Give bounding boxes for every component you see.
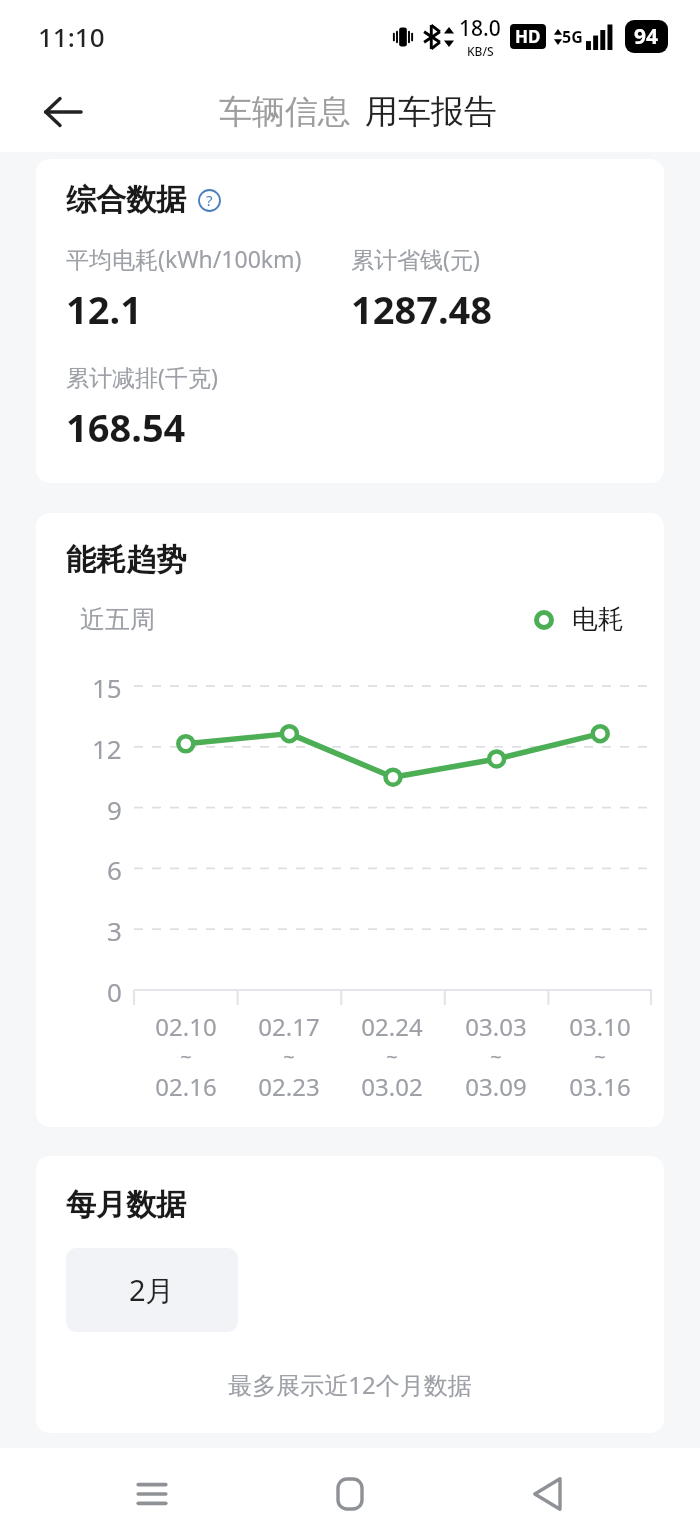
staticText: 每月数据 <box>66 1186 186 1224</box>
staticText: 03.02 <box>361 1070 423 1103</box>
staticText: 03.10 <box>569 1010 631 1043</box>
staticText: 6 <box>107 852 122 884</box>
staticText: 5G <box>562 26 583 48</box>
staticText: ~ <box>594 1043 606 1070</box>
staticText: 综合数据 <box>66 181 186 219</box>
staticText: 02.10 <box>155 1010 217 1043</box>
staticText: 9 <box>107 792 122 824</box>
staticText: 1287.48 <box>351 283 493 335</box>
button[interactable]: Recent apps <box>106 1448 198 1540</box>
button[interactable]: Home <box>304 1448 396 1540</box>
staticText: 用车报告 <box>365 91 497 133</box>
staticText: 累计省钱(元) <box>351 243 480 274</box>
staticText: ~ <box>283 1043 295 1070</box>
staticText: ? <box>206 190 213 210</box>
staticText: HD <box>515 25 541 48</box>
staticText: 2月 <box>129 1270 175 1310</box>
staticText: 02.24 <box>361 1010 423 1043</box>
staticText: 3 <box>107 913 122 945</box>
staticText: ~ <box>180 1043 192 1070</box>
staticText: 15 <box>92 670 122 702</box>
staticText: 03.09 <box>465 1070 527 1103</box>
staticText: 94 <box>634 22 659 51</box>
staticText: 能耗趋势 <box>66 541 186 579</box>
staticText: 累计减排(千克) <box>66 361 218 392</box>
staticText: 0 <box>107 974 122 1006</box>
staticText: 03.03 <box>465 1010 527 1043</box>
button[interactable]: 2月 <box>66 1248 238 1332</box>
staticText: 电耗 <box>572 603 624 636</box>
staticText: 11:10 <box>38 19 105 54</box>
staticText: 02.16 <box>155 1070 217 1103</box>
staticText: 12 <box>92 731 122 763</box>
staticText: 03.16 <box>569 1070 631 1103</box>
staticText: 02.17 <box>258 1010 320 1043</box>
staticText: 02.23 <box>258 1070 320 1103</box>
staticText: 近五周 <box>80 604 155 635</box>
button[interactable]: Back <box>30 79 96 145</box>
staticText: 18.0 <box>459 14 501 43</box>
staticText: ~ <box>490 1043 502 1070</box>
button[interactable]: Back <box>502 1448 594 1540</box>
staticText: 平均电耗(kWh/100km) <box>66 243 302 274</box>
staticText: 最多展示近12个月数据 <box>36 1368 664 1401</box>
staticText: ~ <box>386 1043 398 1070</box>
staticText: 车辆信息 <box>219 91 351 133</box>
button[interactable]: Help <box>196 187 222 213</box>
staticText: 168.54 <box>66 401 186 453</box>
staticText: 12.1 <box>66 283 142 335</box>
staticText: KB/S <box>467 43 494 59</box>
